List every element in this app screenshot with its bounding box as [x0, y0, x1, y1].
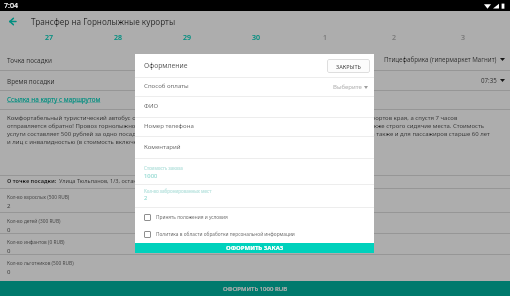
staticText: Ссылка на карту с маршрутом: [7, 95, 101, 104]
staticText: отправляется обратно! Провоз горнолыжног…: [7, 122, 485, 130]
button[interactable]: Принять положения и условия: [135, 208, 374, 226]
staticText: 1000: [144, 172, 158, 180]
button[interactable]: Кол-во забронированных мест: [135, 185, 374, 207]
staticText: ОФОРМИТЬ ЗАКАЗ: [226, 244, 284, 252]
button[interactable]: ФИО: [135, 97, 374, 117]
staticText: Трансфер на Горнолыжные курорты: [31, 16, 176, 27]
staticText: Коментарий: [144, 142, 181, 150]
staticText: Улица Тюльпанов, 1/3, остановка обществе…: [59, 177, 226, 185]
button[interactable]: ЗАКРЫТЬ: [327, 59, 370, 73]
button[interactable]: Способ оплаты: [135, 78, 374, 96]
staticText: Кол-во льготников (500 RUB): [7, 260, 74, 267]
button[interactable]: 30: [222, 30, 291, 45]
button[interactable]: [0, 189, 510, 210]
staticText: Время посадки: [7, 77, 55, 86]
staticText: Кол-во забронированных мест: [144, 188, 212, 194]
staticText: 07:35: [481, 76, 497, 84]
staticText: Кол-во взрослых (500 RUB): [7, 194, 70, 201]
staticText: и лиц с инвалидностью (в стоимость включ…: [7, 138, 212, 146]
staticText: 30: [252, 33, 261, 43]
staticText: 29: [183, 33, 192, 43]
staticText: Способ оплаты: [144, 81, 189, 89]
staticText: 7:04: [4, 1, 18, 11]
button[interactable]: 29: [153, 30, 222, 45]
staticText: 0: [7, 226, 11, 234]
staticText: Оформление: [144, 61, 188, 70]
staticText: Кол-во детей (300 RUB): [7, 218, 61, 225]
staticText: 27: [45, 33, 54, 43]
staticText: Стоимость заказа: [144, 165, 183, 171]
staticText: ОФОРМИТЬ 1000 RUB: [223, 285, 288, 293]
staticText: 2: [392, 33, 397, 43]
staticText: услуги составляет 500 рублей за одно пос…: [7, 130, 490, 138]
button[interactable]: Коментарий: [135, 137, 374, 158]
button[interactable]: Точка посадки: [0, 48, 510, 70]
button[interactable]: [0, 213, 510, 234]
staticText: ФИО: [144, 101, 159, 109]
button[interactable]: ОФОРМИТЬ ЗАКАЗ: [135, 243, 374, 253]
staticText: Политика в области обработки персонально…: [156, 231, 295, 238]
staticText: 0: [7, 247, 11, 255]
staticText: Точка посадки: [7, 56, 52, 65]
staticText: Птицефабрика (гипермаркет Магнит): [384, 55, 497, 63]
button[interactable]: [0, 255, 510, 276]
button[interactable]: 27: [15, 30, 84, 45]
button[interactable]: О точке посадки:: [7, 175, 510, 187]
button[interactable]: 3: [429, 30, 498, 45]
staticText: 28: [114, 33, 123, 43]
staticText: 0: [7, 268, 11, 276]
staticText: Выберите: [333, 83, 362, 91]
staticText: 3: [461, 33, 466, 43]
button[interactable]: Back: [2, 11, 22, 31]
button[interactable]: 28: [84, 30, 153, 45]
staticText: Принять положения и условия: [156, 214, 228, 221]
button[interactable]: Время посадки: [0, 70, 510, 90]
staticText: ЗАКРЫТЬ: [336, 63, 361, 70]
staticText: О точке посадки:: [7, 177, 57, 185]
button[interactable]: 2: [360, 30, 429, 45]
button[interactable]: ОФОРМИТЬ 1000 RUB: [0, 281, 510, 296]
button[interactable]: Политика в области обработки персонально…: [135, 226, 374, 243]
button[interactable]: [0, 234, 510, 255]
staticText: 2: [144, 194, 148, 202]
button[interactable]: Стоимость заказа: [135, 159, 374, 184]
button[interactable]: Ссылка на карту с маршрутом: [0, 90, 510, 109]
staticText: Комфортабельный туристический автобус от…: [7, 114, 458, 122]
button[interactable]: Номер телефона: [135, 118, 374, 136]
staticText: Кол-во инфантов (0 RUB): [7, 239, 65, 246]
staticText: 1: [323, 33, 328, 43]
staticText: Номер телефона: [144, 121, 194, 129]
staticText: 2: [7, 202, 11, 210]
